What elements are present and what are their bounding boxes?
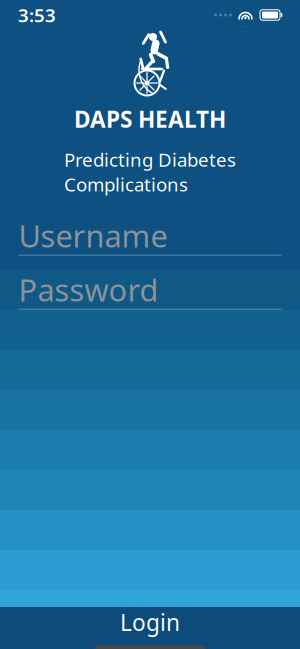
staticText: Username [18, 215, 167, 256]
staticText: Password [18, 269, 158, 310]
button[interactable]: Login [0, 607, 300, 649]
staticText: 3:53 [18, 3, 56, 27]
staticText: Predicting Diabetes Complications [64, 147, 236, 197]
staticText: DAPS HEALTH [74, 104, 226, 134]
staticText: Login [120, 607, 180, 637]
